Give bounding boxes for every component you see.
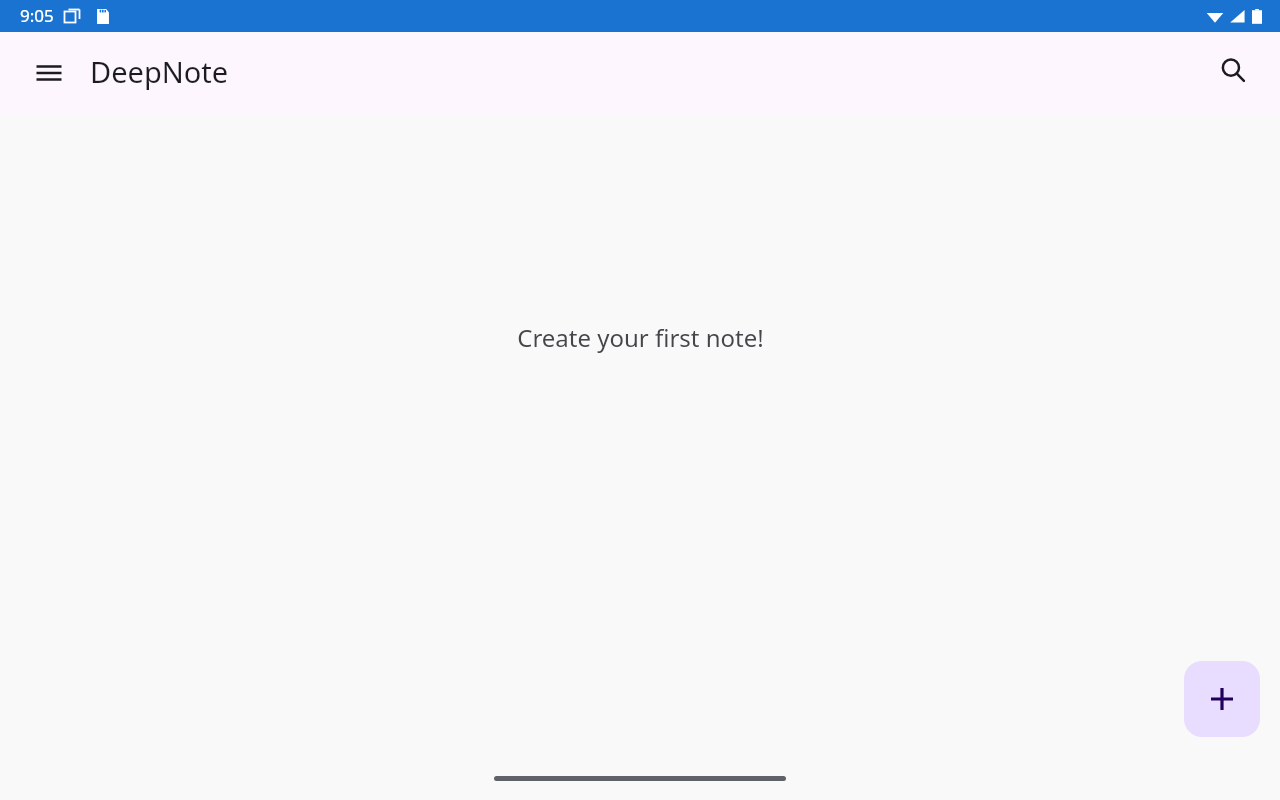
button[interactable]: Open navigation menu — [25, 49, 73, 97]
button[interactable]: Search — [1209, 46, 1257, 94]
button[interactable]: Create note — [1184, 661, 1260, 737]
staticText: 9:05 — [20, 4, 54, 27]
staticText: DeepNote — [90, 52, 229, 91]
staticText: Create your first note! — [517, 321, 764, 354]
